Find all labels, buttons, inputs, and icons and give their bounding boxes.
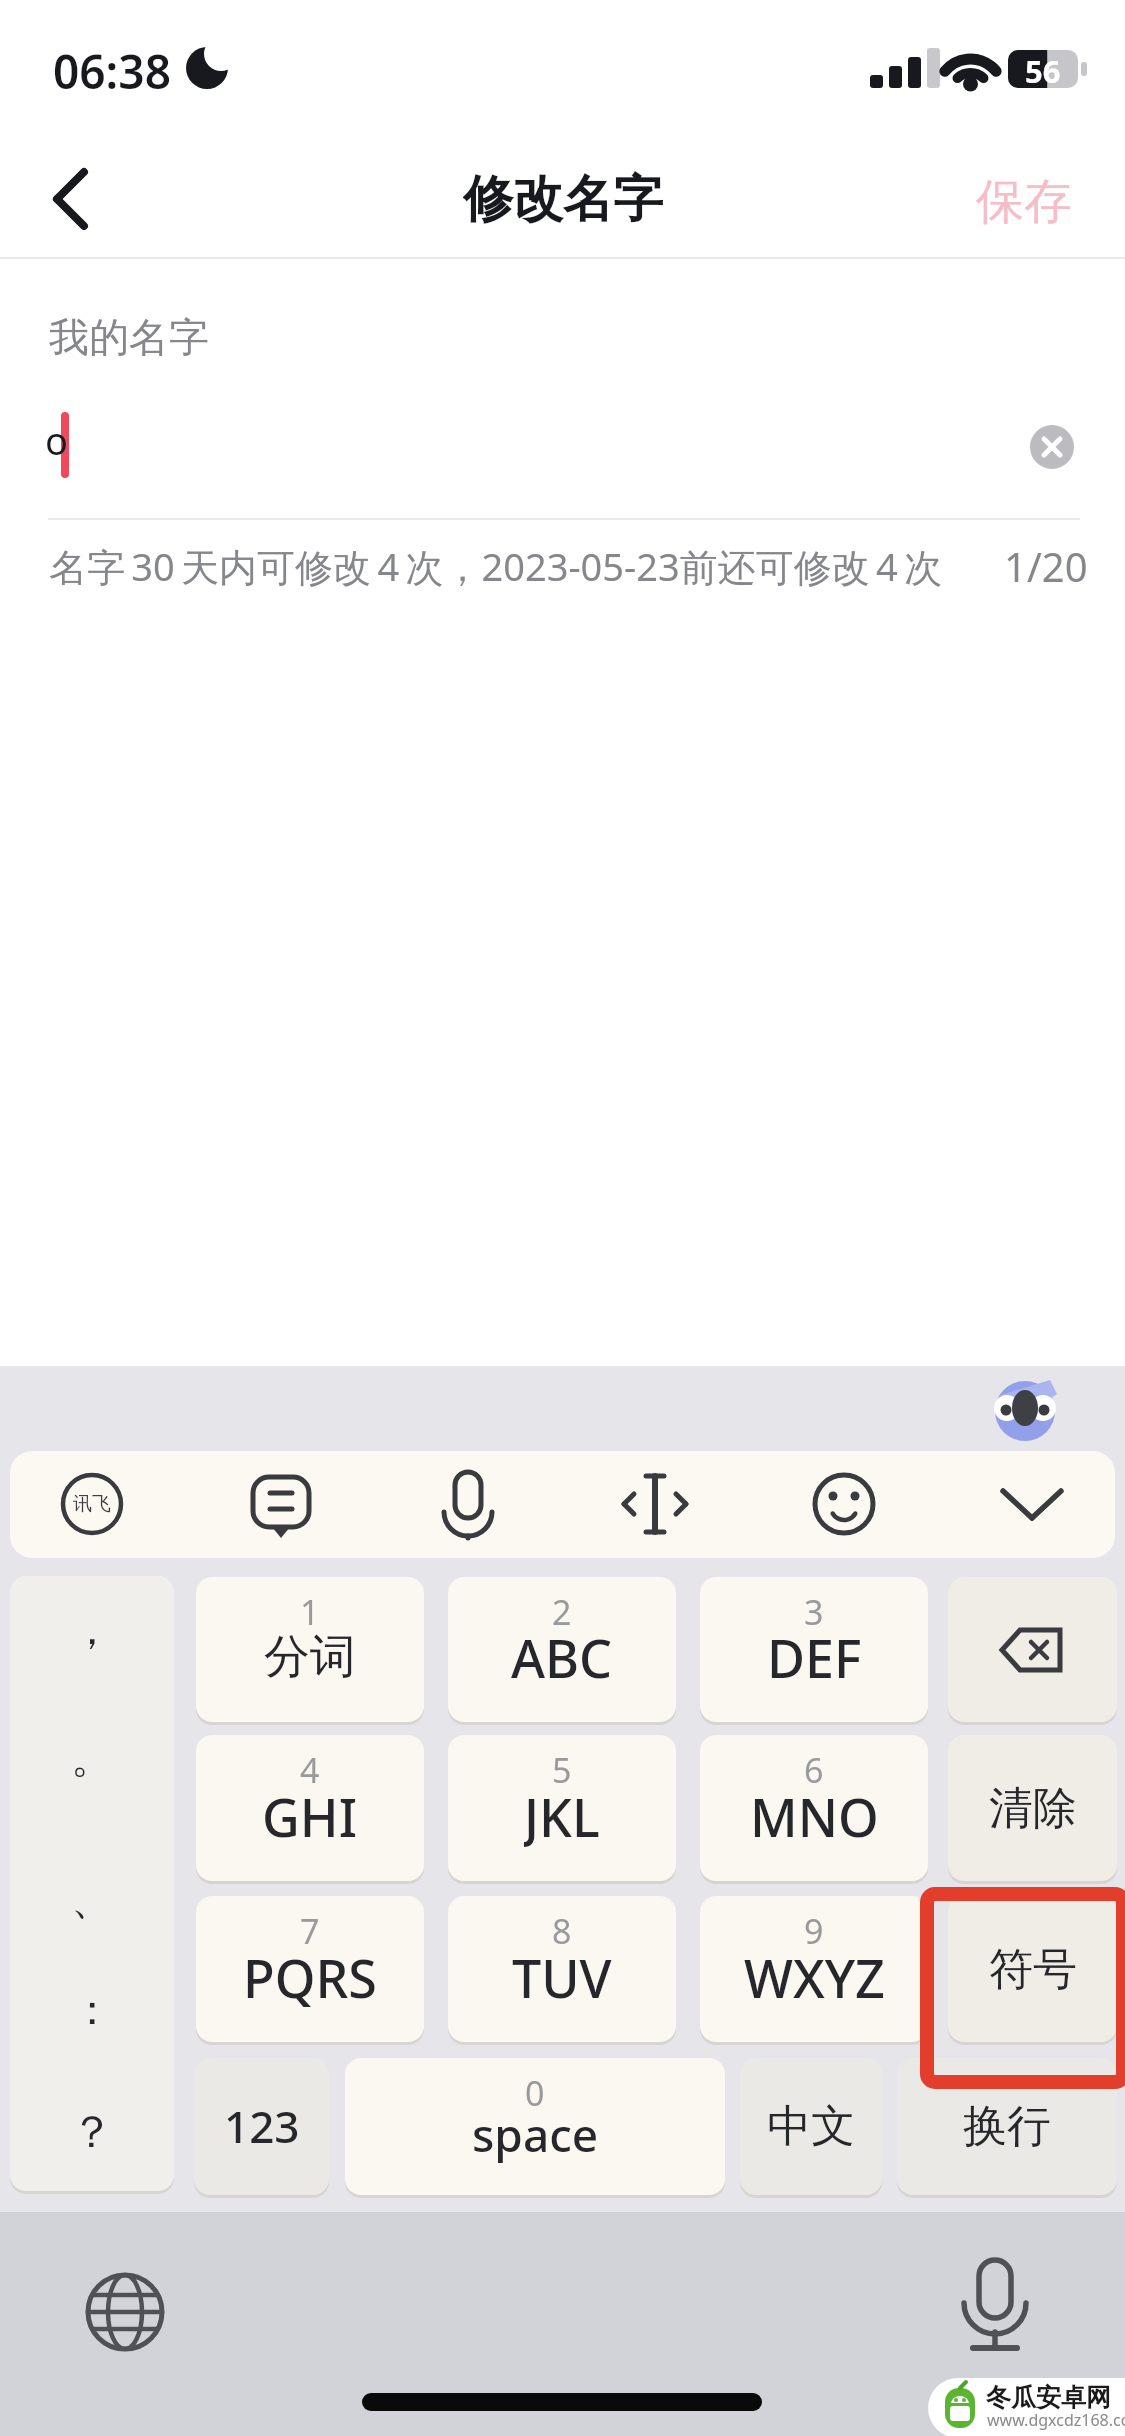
staticText: 分词 xyxy=(264,1628,356,1686)
staticText: 0 xyxy=(525,2070,545,2110)
staticText: 、 xyxy=(71,1874,113,1927)
staticText: 7 xyxy=(300,1908,320,1948)
staticText: ， xyxy=(71,1604,113,1657)
staticText: TUV xyxy=(512,1942,612,2012)
staticText: JKL xyxy=(524,1781,600,1851)
staticText: WXYZ xyxy=(744,1942,885,2012)
staticText: space xyxy=(472,2103,599,2166)
staticText: 清除 xyxy=(989,1781,1077,1836)
staticText: 中文 xyxy=(767,2099,855,2154)
staticText: 6 xyxy=(804,1747,824,1787)
staticText: 冬瓜安卓网 xyxy=(986,2382,1111,2413)
staticText: 1 xyxy=(300,1589,320,1629)
staticText: 名字 30 天内可修改 4 次，2023-05-23前还可修改 4 次 xyxy=(49,540,943,592)
staticText: ： xyxy=(71,1984,113,2037)
staticText: 9 xyxy=(804,1908,824,1948)
staticText: 符号 xyxy=(989,1942,1077,1997)
staticText: ABC xyxy=(511,1622,613,1692)
staticText: MNO xyxy=(750,1781,879,1851)
staticText: 3 xyxy=(804,1589,824,1629)
staticText: o xyxy=(45,414,68,466)
staticText: 56 xyxy=(1025,50,1061,88)
staticText: 06:38 xyxy=(53,40,171,103)
staticText: 1/20 xyxy=(1004,539,1088,593)
staticText: 2 xyxy=(552,1589,572,1629)
staticText: 4 xyxy=(300,1747,320,1787)
staticText: 。 xyxy=(71,1732,113,1785)
staticText: 修改名字 xyxy=(463,168,663,230)
staticText: 5 xyxy=(552,1747,572,1787)
staticText: 我的名字 xyxy=(49,312,209,362)
staticText: GHI xyxy=(262,1781,358,1851)
staticText: 讯飞 xyxy=(73,1492,111,1516)
staticText: ？ xyxy=(70,2105,114,2160)
staticText: www.dgxcdz168.com xyxy=(987,2409,1125,2431)
staticText: PQRS xyxy=(243,1942,377,2012)
staticText: 换行 xyxy=(963,2099,1051,2154)
staticText: 8 xyxy=(552,1908,572,1948)
staticText: DEF xyxy=(767,1622,862,1692)
staticText: 123 xyxy=(224,2096,300,2156)
staticText: 保存 xyxy=(976,172,1072,232)
